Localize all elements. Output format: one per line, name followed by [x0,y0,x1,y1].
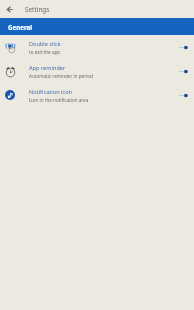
button[interactable]: Double click [0,35,194,59]
staticText: Double click [29,40,61,48]
staticText: General [8,23,33,31]
button[interactable]: Notification icon [0,83,194,107]
button[interactable]: App reminder [0,59,194,83]
staticText: Automatic reminder in period [29,73,93,79]
button[interactable]: Toggle App reminder [172,59,194,83]
staticText: Icon in the notification area [29,97,89,103]
staticText: Notification icon [29,88,73,96]
button[interactable]: Toggle Double click [172,35,194,59]
button[interactable]: Back [0,0,18,18]
button[interactable]: Toggle Notification icon [172,83,194,107]
staticText: to exit the app [29,49,61,55]
staticText: App reminder [29,64,66,72]
staticText: Settings [25,5,50,14]
